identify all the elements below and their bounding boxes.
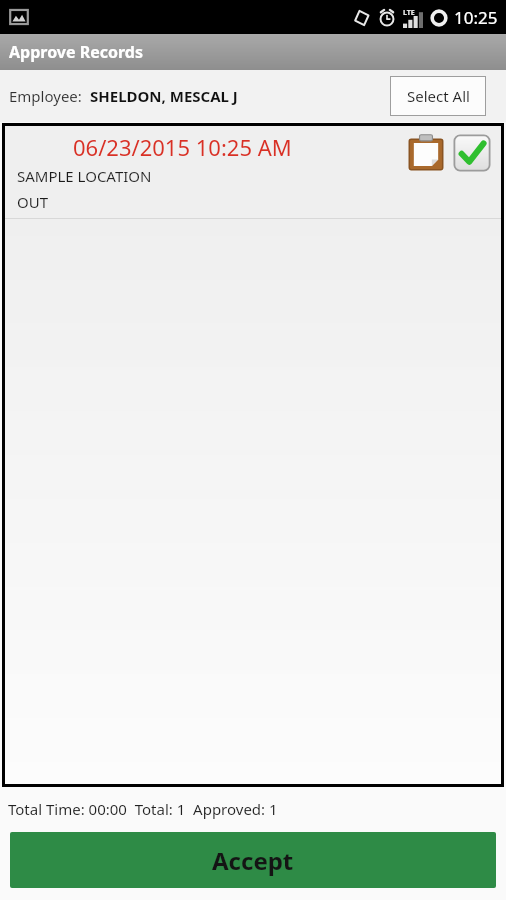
staticText: 06/23/2015 10:25 AM — [73, 132, 292, 162]
staticText: SAMPLE LOCATION — [17, 166, 152, 186]
staticText: LTE — [403, 8, 415, 18]
button[interactable]: Notes — [405, 132, 447, 174]
staticText: SHELDON, MESCAL J — [90, 86, 238, 106]
button[interactable]: 06/23/2015 10:25 AM — [5, 126, 501, 219]
staticText: Accept — [212, 844, 294, 877]
staticText: Select All — [407, 86, 470, 106]
staticText: Total Time: 00:00 Total: 1 Approved: 1 — [8, 799, 278, 819]
button[interactable]: Select All — [390, 76, 486, 116]
staticText: 10:25 — [454, 6, 498, 29]
staticText: Approve Records — [9, 41, 143, 63]
button[interactable]: Approve record — [451, 132, 493, 174]
staticText: OUT — [17, 192, 49, 212]
staticText: Employee: — [9, 86, 90, 106]
button[interactable]: Accept — [10, 832, 496, 888]
